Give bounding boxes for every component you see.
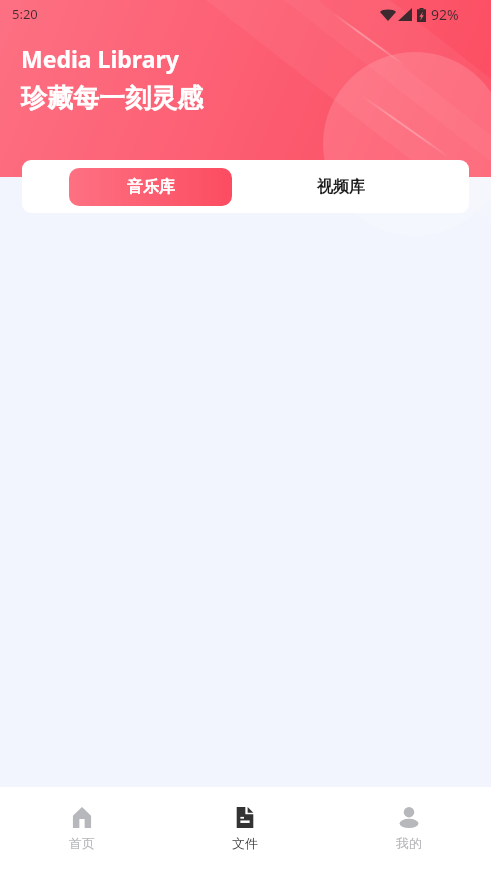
button[interactable]: Files bbox=[163, 787, 327, 851]
staticText: 音乐库 bbox=[127, 177, 175, 197]
button[interactable]: Profile bbox=[327, 787, 491, 851]
staticText: 92% bbox=[431, 5, 459, 24]
button[interactable]: 音乐库 bbox=[69, 168, 232, 206]
staticText: 视频库 bbox=[317, 177, 365, 197]
staticText: 珍藏每一刻灵感 bbox=[21, 82, 203, 115]
staticText: 首页 bbox=[69, 835, 95, 851]
staticText: 文件 bbox=[232, 835, 258, 851]
staticText: 5:20 bbox=[12, 5, 38, 23]
button[interactable]: 视频库 bbox=[232, 168, 469, 206]
staticText: 我的 bbox=[396, 835, 422, 851]
button[interactable]: Home bbox=[0, 787, 163, 851]
staticText: Media Library bbox=[21, 43, 179, 74]
